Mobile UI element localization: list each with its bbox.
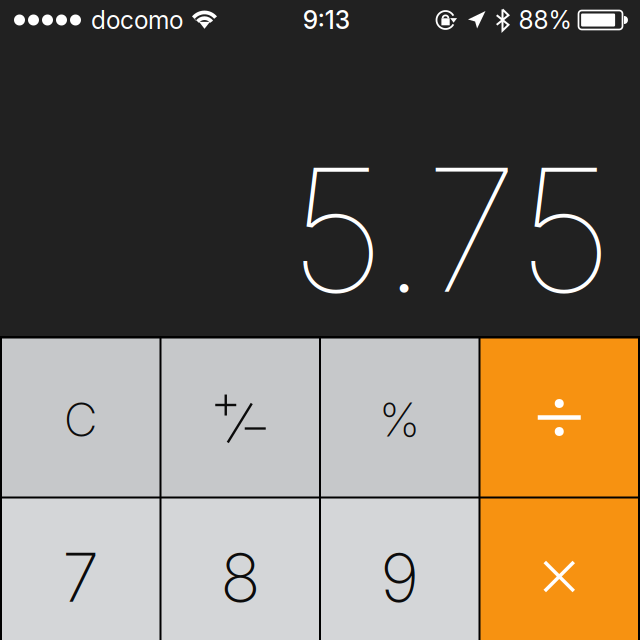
button[interactable]: Nine [321, 498, 478, 640]
staticText: docomo [91, 5, 183, 35]
staticText: % [379, 391, 421, 448]
staticText: 8 [220, 537, 260, 618]
staticText: 7 [62, 537, 99, 618]
button[interactable]: Seven [2, 498, 159, 640]
button[interactable]: Percent [321, 338, 478, 496]
staticText: 9:13 [303, 5, 350, 35]
button[interactable]: Eight [161, 498, 319, 640]
staticText: C [64, 391, 98, 448]
button[interactable]: Multiply [480, 498, 638, 640]
button[interactable]: Divide [480, 338, 638, 496]
staticText: 9 [380, 537, 419, 618]
button[interactable]: Plus minus [161, 338, 319, 496]
staticText: 88% [518, 5, 571, 35]
staticText: 5.75 [289, 126, 613, 333]
button[interactable]: Clear [2, 338, 159, 496]
